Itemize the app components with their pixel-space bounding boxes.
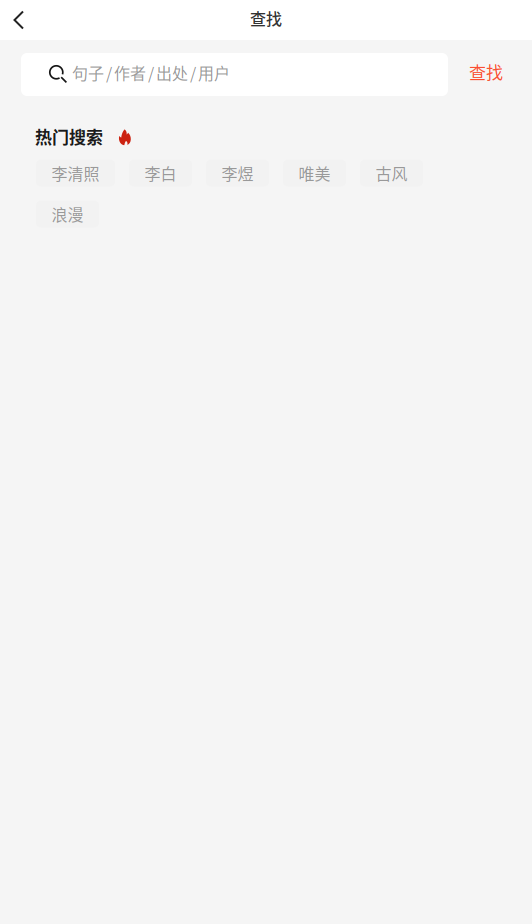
staticText: 查找 bbox=[250, 6, 282, 30]
staticText: 浪漫 bbox=[51, 202, 83, 226]
button[interactable]: 浪漫 bbox=[36, 201, 99, 228]
staticText: 李清照 bbox=[51, 161, 99, 185]
staticText: 李煜 bbox=[221, 161, 253, 185]
button[interactable]: 句子 / 作者 / 出处 / 用户 bbox=[21, 53, 448, 96]
button[interactable]: 查找 bbox=[448, 53, 532, 96]
button[interactable]: 李白 bbox=[129, 160, 192, 187]
staticText: 句子 / 作者 / 出处 / 用户 bbox=[72, 61, 230, 84]
staticText: 李白 bbox=[144, 161, 176, 185]
staticText: 查找 bbox=[469, 59, 503, 84]
button[interactable]: 唯美 bbox=[283, 160, 346, 187]
button[interactable]: 李煜 bbox=[206, 160, 269, 187]
staticText: 古风 bbox=[375, 161, 407, 185]
button[interactable]: 古风 bbox=[360, 160, 423, 187]
staticText: 唯美 bbox=[298, 161, 330, 185]
staticText: 热门搜索 bbox=[35, 124, 103, 149]
button[interactable]: 李清照 bbox=[36, 160, 115, 187]
button[interactable]: Back bbox=[0, 0, 38, 40]
